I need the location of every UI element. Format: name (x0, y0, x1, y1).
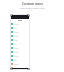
staticText: Custom icons (22, 2, 43, 6)
button[interactable] (10, 50, 30, 54)
button[interactable] (10, 54, 30, 58)
button[interactable] (10, 34, 30, 38)
button[interactable] (10, 58, 30, 62)
button[interactable] (10, 66, 30, 70)
button[interactable] (10, 42, 30, 46)
button[interactable] (10, 38, 30, 42)
button[interactable] (10, 30, 30, 34)
button[interactable] (10, 62, 30, 66)
staticText: Make every shortcut yours (20, 7, 45, 10)
button[interactable] (10, 26, 30, 30)
button[interactable] (10, 46, 30, 50)
button[interactable] (10, 22, 30, 26)
